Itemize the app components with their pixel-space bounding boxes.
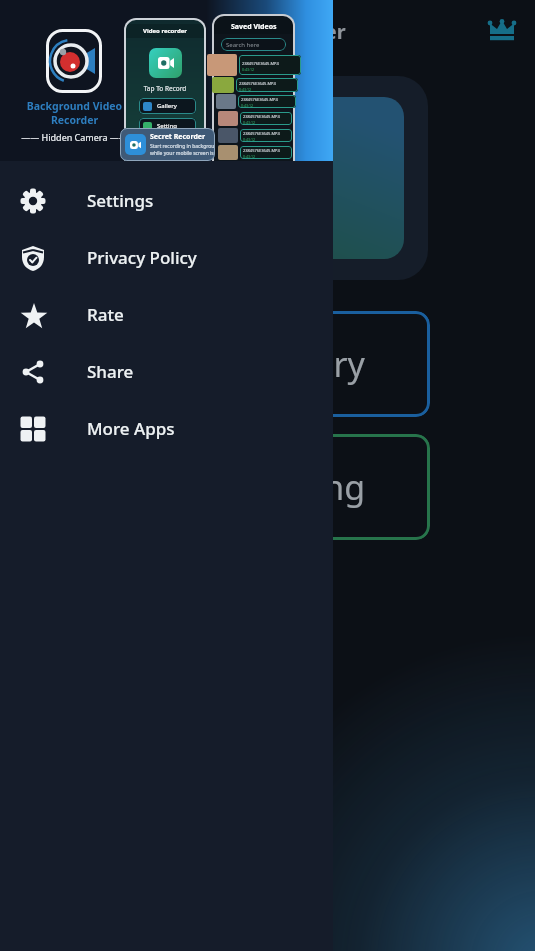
staticText: Tap To Record <box>126 84 204 93</box>
staticText: while your mobile screen is off <box>150 150 215 157</box>
staticText: Search here <box>226 41 260 49</box>
button[interactable]: Share <box>0 343 333 400</box>
staticText: Background Video Recorder <box>69 18 346 45</box>
button[interactable]: Gallery <box>105 311 430 417</box>
button[interactable]: Rate <box>0 286 333 343</box>
staticText: Video recorder <box>143 27 187 35</box>
staticText: 2384576E3645.MP4 <box>243 131 280 136</box>
staticText: Background Video Recorder <box>8 99 141 127</box>
staticText: 0:43:12 <box>243 120 255 125</box>
staticText: Setting <box>252 464 366 510</box>
staticText: Privacy Policy <box>87 246 197 269</box>
staticText: Settings <box>87 189 154 212</box>
staticText: Share <box>87 360 134 383</box>
staticText: Setting <box>157 122 177 130</box>
staticText: Secret Recorder <box>150 132 206 142</box>
staticText: 2384576E3645.MP4 <box>242 61 279 66</box>
staticText: 2384576E3645.MP4 <box>239 81 276 86</box>
staticText: 0:43:12 <box>239 87 251 92</box>
staticText: Rate <box>87 303 124 326</box>
button[interactable] <box>487 19 519 43</box>
staticText: Start recording in background <box>150 143 215 150</box>
staticText: 2384576E3645.MP4 <box>243 114 280 119</box>
button[interactable] <box>107 76 428 280</box>
staticText: 2384576E3645.MP4 <box>241 97 278 102</box>
button[interactable]: Settings <box>0 172 333 229</box>
staticText: More Apps <box>87 417 175 440</box>
staticText: 0:43:12 <box>243 137 255 142</box>
staticText: 0:43:12 <box>241 103 253 108</box>
staticText: 2384576E3645.MP4 <box>243 148 280 153</box>
staticText: —— Hidden Camera —— <box>8 131 141 143</box>
staticText: Gallery <box>253 341 365 387</box>
button[interactable]: Background Video Recorder <box>0 0 333 161</box>
button[interactable]: Setting <box>105 434 430 540</box>
staticText: Gallery <box>157 102 177 110</box>
button[interactable]: More Apps <box>0 400 333 457</box>
staticText: 0:43:12 <box>242 67 254 72</box>
staticText: 0:43:12 <box>243 154 255 159</box>
staticText: Saved Videos <box>231 22 277 32</box>
button[interactable]: Privacy Policy <box>0 229 333 286</box>
